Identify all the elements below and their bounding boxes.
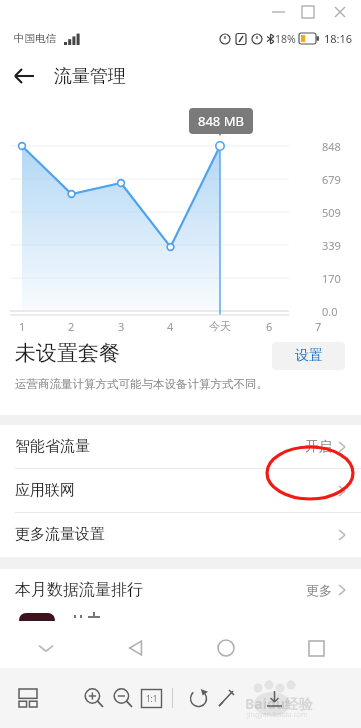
staticText: 1 bbox=[19, 319, 26, 334]
button[interactable]: 下载 bbox=[262, 686, 286, 710]
staticText: 流量管理 bbox=[54, 65, 126, 88]
staticText: jingyan.baidu.com bbox=[247, 710, 308, 720]
staticText: 679 bbox=[322, 172, 341, 187]
staticText: 中国电信 bbox=[14, 32, 56, 45]
button[interactable]: 收起 bbox=[0, 628, 91, 668]
staticText: 设置 bbox=[295, 347, 323, 365]
staticText: 509 bbox=[322, 205, 341, 220]
staticText: 2 bbox=[68, 319, 75, 334]
button[interactable]: 最近任务 bbox=[271, 628, 361, 668]
staticText: 339 bbox=[322, 238, 341, 253]
staticText: Baidu经验 bbox=[245, 694, 313, 713]
button[interactable]: 放大 bbox=[78, 682, 110, 714]
staticText: 1:1 bbox=[146, 693, 158, 704]
staticText: 848 bbox=[322, 139, 341, 154]
staticText: 更多流量设置 bbox=[15, 525, 105, 544]
staticText: 170 bbox=[322, 271, 341, 286]
button[interactable]: 编辑 bbox=[210, 682, 242, 714]
staticText: 7 bbox=[315, 319, 322, 334]
button[interactable]: 原始大小 bbox=[137, 684, 165, 712]
staticText: 本月数据流量排行 bbox=[15, 580, 143, 600]
staticText: 今天 bbox=[209, 319, 231, 333]
button[interactable]: 更多流量设置 bbox=[0, 513, 361, 556]
button[interactable]: 设置 bbox=[272, 342, 345, 370]
button[interactable]: 智能省流量 bbox=[0, 425, 361, 468]
staticText: 3 bbox=[118, 319, 125, 334]
button[interactable]: 缩小 bbox=[107, 682, 139, 714]
staticText: 18% bbox=[275, 32, 296, 46]
button[interactable]: 本月数据流量排行 bbox=[0, 569, 361, 611]
staticText: 0.0 bbox=[322, 304, 338, 319]
button[interactable]: 主页 bbox=[181, 628, 271, 668]
staticText: 4 bbox=[167, 319, 174, 334]
button[interactable]: 返回 bbox=[0, 52, 48, 100]
button[interactable]: 返回 bbox=[91, 628, 181, 668]
staticText: 智能省流量 bbox=[15, 437, 90, 456]
button[interactable]: 旋转 bbox=[182, 682, 214, 714]
staticText: 18:16 bbox=[324, 31, 353, 46]
staticText: 未设置套餐 bbox=[15, 340, 120, 366]
staticText: 848 MB bbox=[198, 112, 244, 130]
staticText: 运营商流量计算方式可能与本设备计算方式不同。 bbox=[15, 377, 268, 391]
button[interactable]: 应用联网 bbox=[0, 469, 361, 512]
button[interactable]: 布局 bbox=[12, 682, 44, 714]
staticText: 开启 bbox=[305, 438, 332, 455]
staticText: 应用联网 bbox=[15, 481, 75, 500]
staticText: 更多 bbox=[306, 582, 332, 598]
staticText: 6 bbox=[266, 319, 273, 334]
